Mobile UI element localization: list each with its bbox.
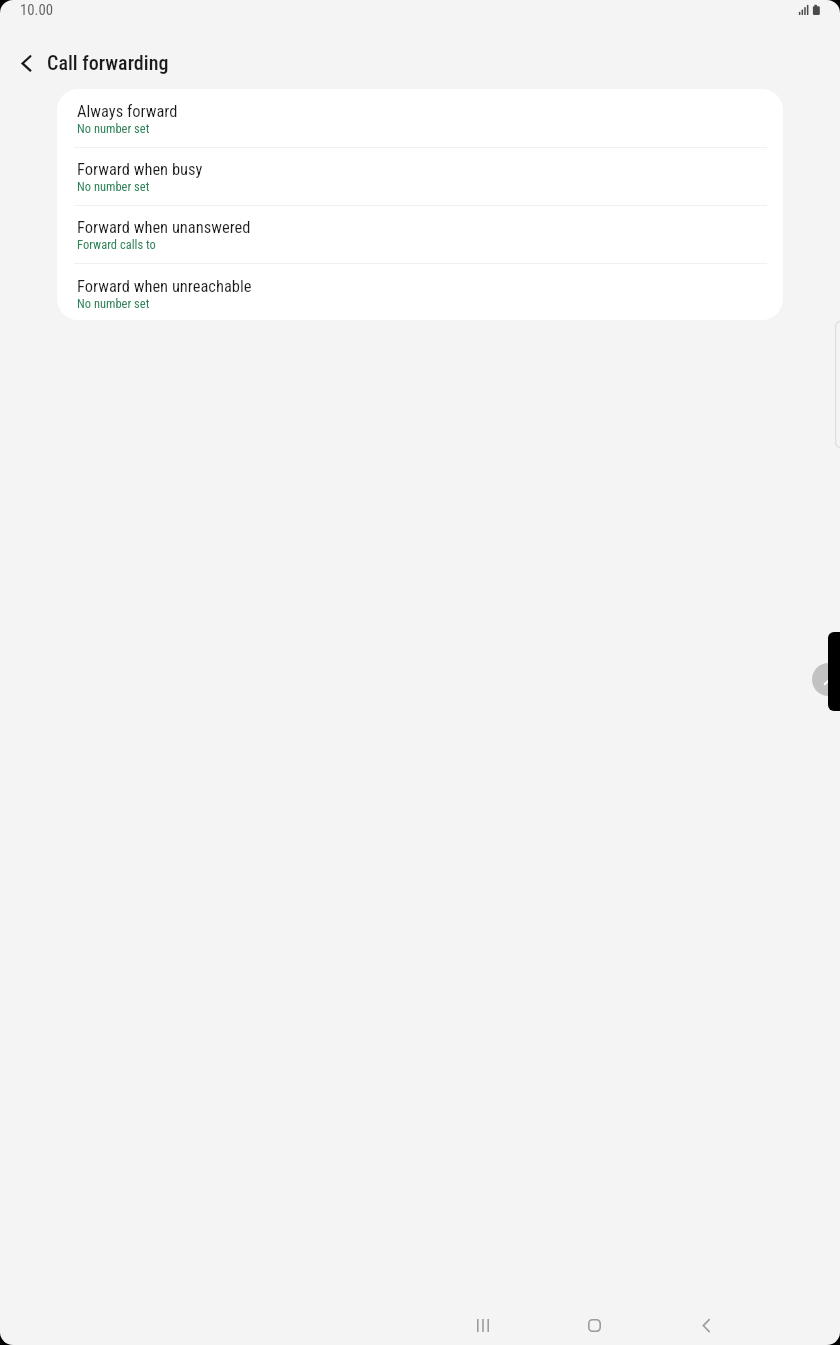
staticText: Always forward bbox=[77, 102, 178, 121]
staticText: Call forwarding bbox=[47, 51, 169, 74]
button[interactable]: Forward when unreachable bbox=[57, 264, 783, 320]
button[interactable]: Forward when unanswered bbox=[57, 205, 783, 263]
staticText: No number set bbox=[77, 296, 150, 311]
staticText: Forward when busy bbox=[77, 160, 203, 179]
button[interactable]: Edge panel handle bbox=[812, 663, 840, 696]
staticText: Forward when unanswered bbox=[77, 218, 251, 237]
button[interactable]: Back bbox=[679, 1307, 733, 1343]
button[interactable]: Navigate up bbox=[5, 40, 48, 83]
button[interactable]: Forward when busy bbox=[57, 147, 783, 205]
staticText: No number set bbox=[77, 179, 150, 194]
button[interactable]: Recent apps bbox=[456, 1307, 510, 1343]
staticText: Forward calls to bbox=[77, 237, 156, 252]
button[interactable]: Always forward bbox=[57, 89, 783, 147]
staticText: Forward when unreachable bbox=[77, 277, 252, 296]
button[interactable]: Home bbox=[567, 1307, 621, 1343]
staticText: 10.00 bbox=[20, 1, 54, 18]
staticText: No number set bbox=[77, 121, 150, 136]
